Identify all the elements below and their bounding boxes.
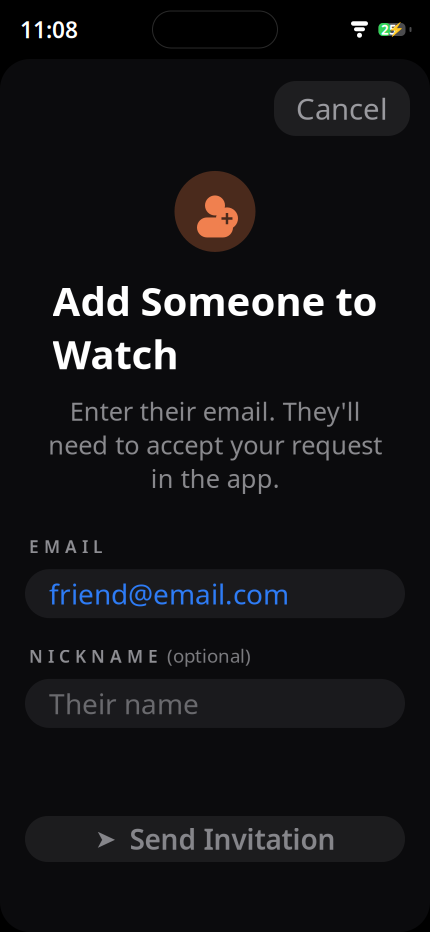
staticText: E M A I L <box>29 535 102 558</box>
staticText: Add Someone to Watch <box>52 274 377 380</box>
button[interactable]: Their name <box>25 679 405 728</box>
staticText: Their name <box>49 685 199 722</box>
staticText: Enter their email. They'll need to accep… <box>48 394 382 495</box>
staticText: friend@email.com <box>49 575 289 612</box>
staticText: (optional) <box>167 643 251 668</box>
button[interactable]: ➤ <box>25 816 405 862</box>
staticText: 11:08 <box>20 14 78 44</box>
staticText: + <box>220 203 233 233</box>
staticText: 25 <box>381 21 397 38</box>
staticText: Send Invitation <box>129 820 335 858</box>
staticText: ⚡ <box>387 22 404 37</box>
staticText: ➤ <box>95 825 116 853</box>
staticText: Cancel <box>296 89 388 128</box>
button[interactable]: friend@email.com <box>25 569 405 618</box>
staticText: N I C K N A M E <box>29 644 158 667</box>
button[interactable]: Cancel <box>274 81 410 136</box>
